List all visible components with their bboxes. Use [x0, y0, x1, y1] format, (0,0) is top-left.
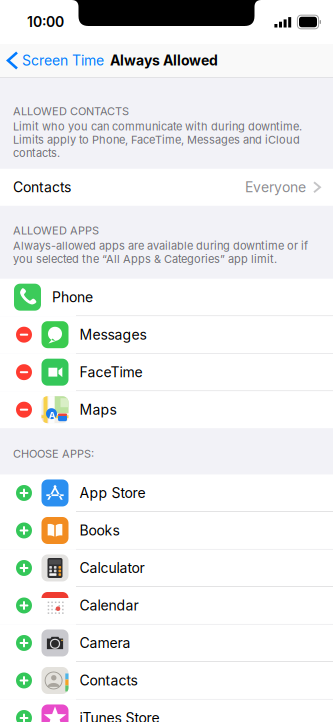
staticText: Contacts [79, 672, 137, 689]
button[interactable]: Camera [0, 624, 333, 662]
button[interactable]: A [0, 391, 333, 428]
staticText: Always Allowed [110, 52, 218, 69]
staticText: Phone [52, 289, 93, 306]
button[interactable]: Contacts [0, 662, 333, 699]
staticText: ALLOWED CONTACTS [13, 104, 129, 118]
button[interactable]: Books [0, 512, 333, 549]
button[interactable]: Messages [0, 316, 333, 354]
button[interactable]: Contacts [0, 169, 333, 206]
staticText: Limit who you can communicate with durin… [13, 120, 302, 160]
button[interactable]: iTunes Store [0, 699, 333, 722]
button[interactable]: Calculator [0, 549, 333, 587]
staticText: Screen Time [22, 52, 104, 69]
staticText: Calendar [79, 597, 138, 614]
staticText: ALLOWED APPS [13, 224, 99, 237]
staticText: Everyone [245, 179, 306, 196]
button[interactable]: Screen Time [0, 44, 110, 77]
staticText: Calculator [79, 559, 144, 576]
staticText: Maps [79, 401, 116, 418]
staticText: Always-allowed apps are available during… [13, 239, 308, 266]
staticText: 10:00 [27, 13, 64, 30]
button[interactable]: FaceTime [0, 354, 333, 391]
staticText: A [49, 410, 56, 421]
button[interactable]: App Store [0, 474, 333, 512]
staticText: App Store [79, 484, 145, 501]
staticText: Contacts [13, 179, 71, 196]
staticText: iTunes Store [79, 709, 159, 722]
staticText: Messages [79, 326, 146, 343]
button[interactable]: Phone [0, 279, 333, 316]
staticText: Books [79, 522, 119, 539]
staticText: CHOOSE APPS: [13, 447, 94, 460]
button[interactable]: Calendar [0, 587, 333, 624]
staticText: FaceTime [79, 364, 142, 381]
staticText: Camera [79, 634, 130, 651]
